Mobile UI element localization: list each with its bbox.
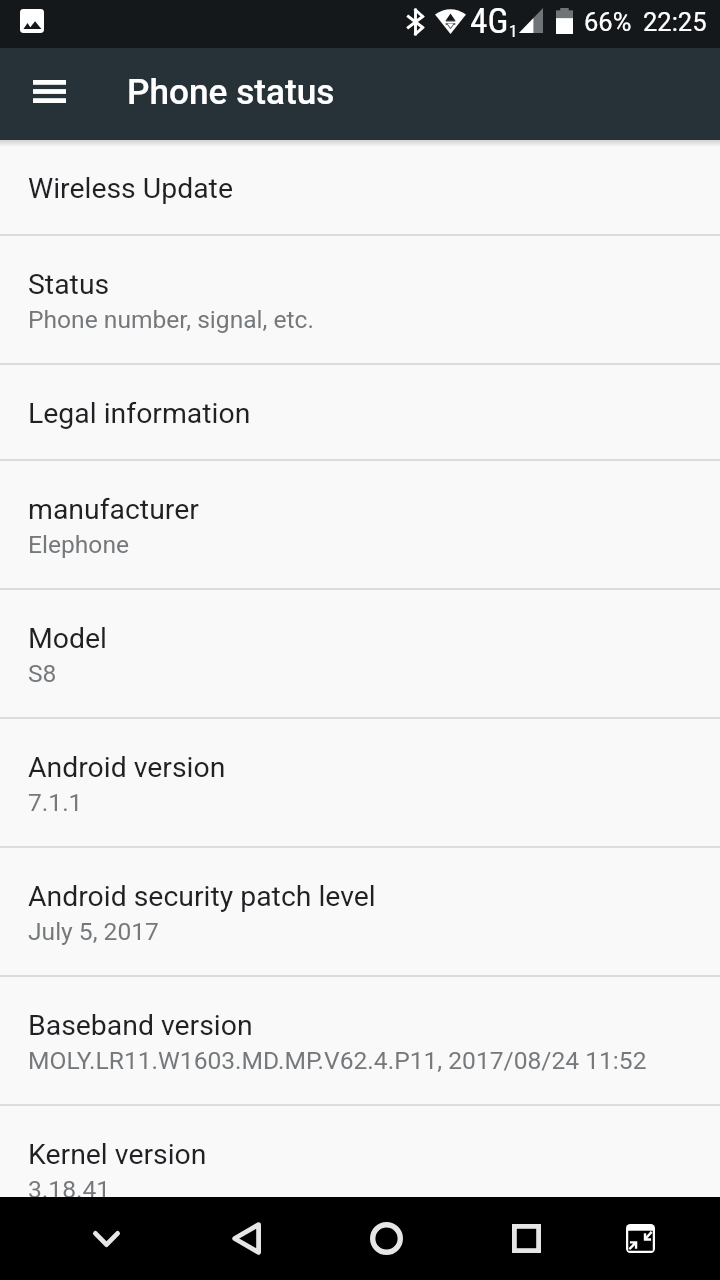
button[interactable]: Home (316, 1197, 456, 1280)
staticText: Baseband version (28, 1009, 253, 1042)
button[interactable]: Status (0, 236, 720, 363)
button[interactable]: One-handed mode (596, 1197, 684, 1280)
staticText: manufacturer (28, 493, 199, 526)
staticText: MOLY.LR11.W1603.MD.MP.V62.4.P11, 2017/08… (28, 1046, 647, 1075)
staticText: 7.1.1 (28, 788, 83, 817)
button[interactable]: Android version (0, 719, 720, 846)
staticText: Android security patch level (28, 880, 376, 913)
button[interactable]: Legal information (0, 365, 720, 459)
staticText: S8 (28, 659, 57, 688)
staticText: Kernel version (28, 1138, 207, 1171)
button[interactable]: Baseband version (0, 977, 720, 1104)
staticText: Wireless Update (28, 172, 233, 205)
button[interactable]: Android security patch level (0, 848, 720, 975)
staticText: July 5, 2017 (28, 917, 159, 946)
staticText: 3.18.41 (28, 1175, 111, 1197)
staticText: Model (28, 622, 107, 655)
button[interactable]: Kernel version (0, 1106, 720, 1197)
button[interactable]: Recent apps (456, 1197, 596, 1280)
button[interactable]: Hide keyboard (36, 1197, 176, 1280)
button[interactable]: manufacturer (0, 461, 720, 588)
staticText: 4G (470, 0, 509, 42)
button[interactable]: Open navigation menu (0, 48, 98, 140)
staticText: 66% (584, 7, 632, 37)
staticText: Phone number, signal, etc. (28, 305, 314, 334)
button[interactable]: Back (176, 1197, 316, 1280)
staticText: 1 (509, 21, 518, 41)
staticText: Phone status (127, 71, 335, 112)
staticText: Legal information (28, 397, 251, 430)
button[interactable]: Wireless Update (0, 140, 720, 234)
staticText: Android version (28, 751, 226, 784)
staticText: Elephone (28, 530, 130, 559)
staticText: 22:25 (643, 7, 707, 37)
staticText: Status (28, 268, 110, 301)
button[interactable]: Model (0, 590, 720, 717)
